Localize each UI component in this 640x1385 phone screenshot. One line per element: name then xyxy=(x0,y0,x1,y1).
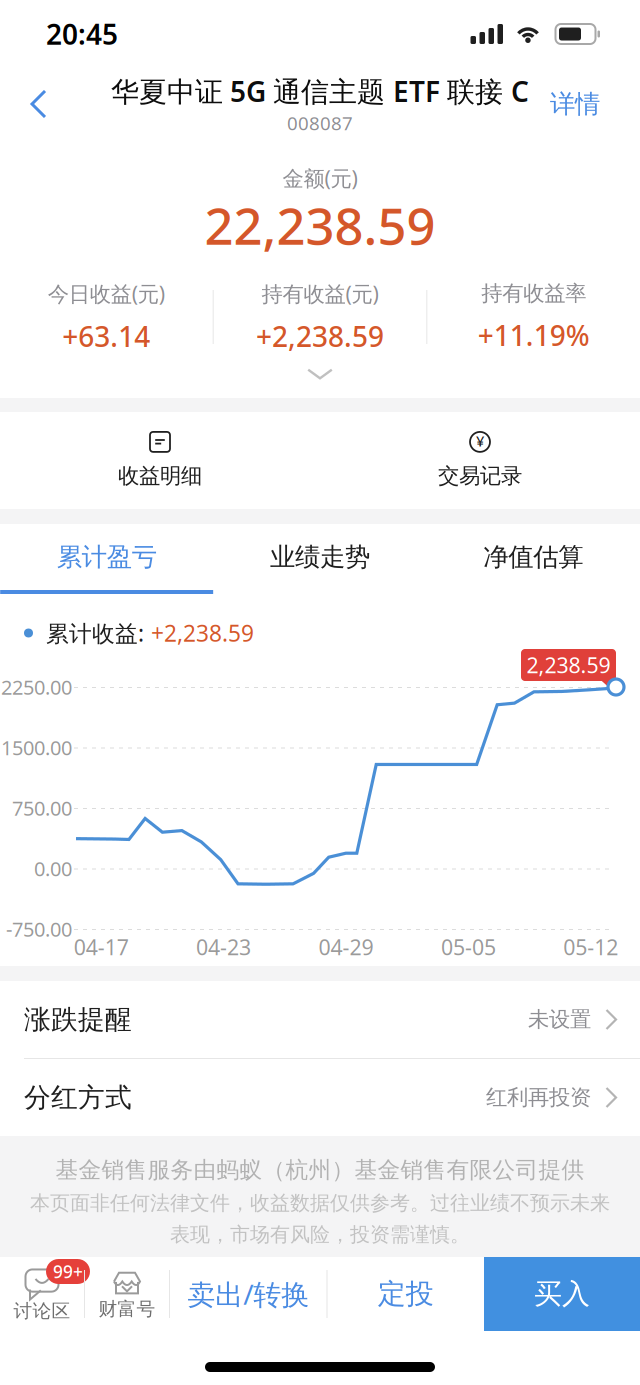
staticText: 04-29 xyxy=(318,933,373,961)
button[interactable]: 买入 xyxy=(484,1257,640,1331)
staticText: 05-12 xyxy=(563,933,618,961)
staticText: 红利再投资 xyxy=(486,1084,591,1111)
staticText: 99+ xyxy=(53,1260,83,1283)
staticText: +2,238.59 xyxy=(256,318,384,355)
staticText: 1500.00 xyxy=(1,734,72,761)
staticText: +63.14 xyxy=(62,318,150,355)
button[interactable]: ¥ xyxy=(320,412,640,509)
staticText: 05-05 xyxy=(441,933,496,961)
button[interactable]: 讨论区 xyxy=(0,1257,84,1331)
staticText: 卖出/转换 xyxy=(187,1275,309,1313)
staticText: 750.00 xyxy=(12,795,72,821)
staticText: 金额(元) xyxy=(282,164,357,192)
staticText: -750.00 xyxy=(6,916,72,942)
staticText: 业绩走势 xyxy=(270,541,370,572)
staticText: 涨跌提醒 xyxy=(24,1003,132,1036)
staticText: 交易记录 xyxy=(438,463,522,489)
staticText: 持有收益率 xyxy=(481,280,586,306)
button[interactable]: 卖出/转换 xyxy=(170,1257,326,1331)
staticText: 华夏中证 5G 通信主题 ETF 联接 C xyxy=(111,72,529,110)
staticText: 表现，市场有风险，投资需谨慎。 xyxy=(170,1222,470,1247)
button[interactable]: 分红方式 xyxy=(0,1059,640,1136)
staticText: 详情 xyxy=(550,88,600,119)
staticText: 净值估算 xyxy=(483,541,583,572)
staticText: +11.19% xyxy=(478,316,590,354)
staticText: 0.00 xyxy=(34,855,72,882)
staticText: 04-17 xyxy=(74,933,129,961)
staticText: 20:45 xyxy=(46,15,118,53)
staticText: 008087 xyxy=(287,111,353,135)
staticText: 22,238.59 xyxy=(204,191,435,259)
button[interactable]: 涨跌提醒 xyxy=(0,981,640,1058)
staticText: 分红方式 xyxy=(24,1081,132,1114)
staticText: 持有收益(元) xyxy=(261,279,378,307)
staticText: ¥ xyxy=(476,431,484,451)
button[interactable]: 收益明细 xyxy=(0,412,320,509)
staticText: 2250.00 xyxy=(1,674,72,700)
staticText: 讨论区 xyxy=(13,1299,70,1322)
button[interactable]: 净值估算 xyxy=(427,524,640,594)
staticText: 收益明细 xyxy=(118,463,202,489)
staticText: 买入 xyxy=(534,1277,590,1311)
button[interactable]: Back xyxy=(0,73,69,135)
staticText: 定投 xyxy=(378,1277,434,1311)
button[interactable]: 业绩走势 xyxy=(213,524,427,594)
staticText: 本页面非任何法律文件，收益数据仅供参考。过往业绩不预示未来 xyxy=(30,1191,610,1215)
staticText: 基金销售服务由蚂蚁（杭州）基金销售有限公司提供 xyxy=(55,1156,584,1184)
staticText: +2,238.59 xyxy=(151,618,254,648)
staticText: 未设置 xyxy=(528,1006,591,1033)
button[interactable]: 财富号 xyxy=(85,1257,169,1331)
staticText: 04-23 xyxy=(196,933,251,961)
staticText: 财富号 xyxy=(98,1297,155,1320)
staticText: 2,238.59 xyxy=(526,651,610,679)
button[interactable]: 定投 xyxy=(327,1257,484,1331)
staticText: 累计收益: xyxy=(46,618,144,648)
staticText: 今日收益(元) xyxy=(48,279,165,307)
button[interactable]: 详情 xyxy=(530,72,640,135)
button[interactable]: 累计盈亏 xyxy=(0,524,213,594)
staticText: 累计盈亏 xyxy=(57,541,157,572)
